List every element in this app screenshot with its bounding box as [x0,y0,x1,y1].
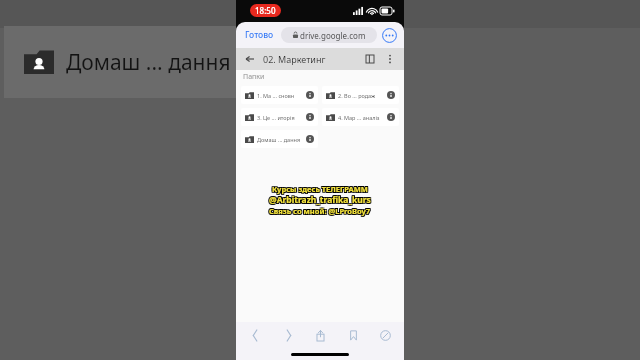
staticText: drive.google.com [300,30,366,41]
staticText: Связь со мной: @LProBoy7 [270,207,372,217]
button[interactable]: 3. Це ... иторія [241,108,318,126]
staticText: Домаш ... дання [66,48,231,77]
staticText: @Arbitrazh_trafika_kurs [269,195,371,207]
button[interactable]: Share [311,326,329,344]
staticText: Курсы здесь ТЕЛЕГРАММ [273,184,369,194]
staticText: 2. Во ... родаж [338,92,376,99]
button[interactable]: Back [242,51,258,67]
staticText: @Arbitrazh_trafika_kurs [270,194,372,206]
staticText: Курсы здесь ТЕЛЕГРАММ [271,185,367,195]
staticText: @Arbitrazh_trafika_kurs [269,194,371,206]
button[interactable]: Готово [243,27,276,43]
button[interactable]: More options [382,28,397,43]
staticText: @Arbitrazh_trafika_kurs [268,194,370,206]
button[interactable]: 2. Во ... родаж [322,86,399,104]
staticText: 1. Ма ... сновн [257,92,295,99]
button[interactable]: Bookmarks [344,326,362,344]
staticText: Готово [245,29,274,41]
staticText: Связь со мной: @LProBoy7 [269,207,371,217]
staticText: Связь со мной: @LProBoy7 [269,206,371,216]
staticText: Связь со мной: @LProBoy7 [269,205,371,215]
staticText: Связь со мной: @LProBoy7 [268,207,370,217]
staticText: Курсы здесь ТЕЛЕГРАММ [273,183,369,193]
staticText: Связь со мной: @LProBoy7 [268,205,370,215]
button[interactable]: Forward [279,326,297,344]
staticText: Курсы здесь ТЕЛЕГРАММ [271,183,367,193]
button[interactable]: More [382,51,398,67]
button[interactable]: Домаш ... дання [241,130,318,148]
staticText: Курсы здесь ТЕЛЕГРАММ [272,185,368,195]
button[interactable]: Switch view [362,51,378,67]
staticText: Курсы здесь ТЕЛЕГРАММ [272,184,368,194]
staticText: Курсы здесь ТЕЛЕГРАММ [271,184,367,194]
staticText: Связь со мной: @LProBoy7 [268,206,370,216]
staticText: @Arbitrazh_trafika_kurs [270,195,372,207]
staticText: Папки [243,72,265,82]
staticText: Курсы здесь ТЕЛЕГРАММ [273,185,369,195]
button[interactable]: 4. Мар ... аналіз [322,108,399,126]
staticText: @Arbitrazh_trafika_kurs [270,193,372,205]
staticText: Домаш ... дання [257,136,301,143]
button[interactable]: Back [246,326,264,344]
button[interactable]: drive.google.com [281,27,377,43]
staticText: 18:50 [255,5,276,16]
staticText: 3. Це ... иторія [257,114,295,121]
staticText: 4. Мар ... аналіз [338,114,380,121]
button[interactable]: 1. Ма ... сновн [241,86,318,104]
button[interactable]: Tabs [376,326,394,344]
staticText: @Arbitrazh_trafika_kurs [269,193,371,205]
staticText: @Arbitrazh_trafika_kurs [268,193,370,205]
staticText: 02. Маркетинг [263,53,326,65]
staticText: Связь со мной: @LProBoy7 [270,206,372,216]
staticText: Курсы здесь ТЕЛЕГРАММ [272,183,368,193]
staticText: Связь со мной: @LProBoy7 [270,205,372,215]
staticText: @Arbitrazh_trafika_kurs [268,195,370,207]
